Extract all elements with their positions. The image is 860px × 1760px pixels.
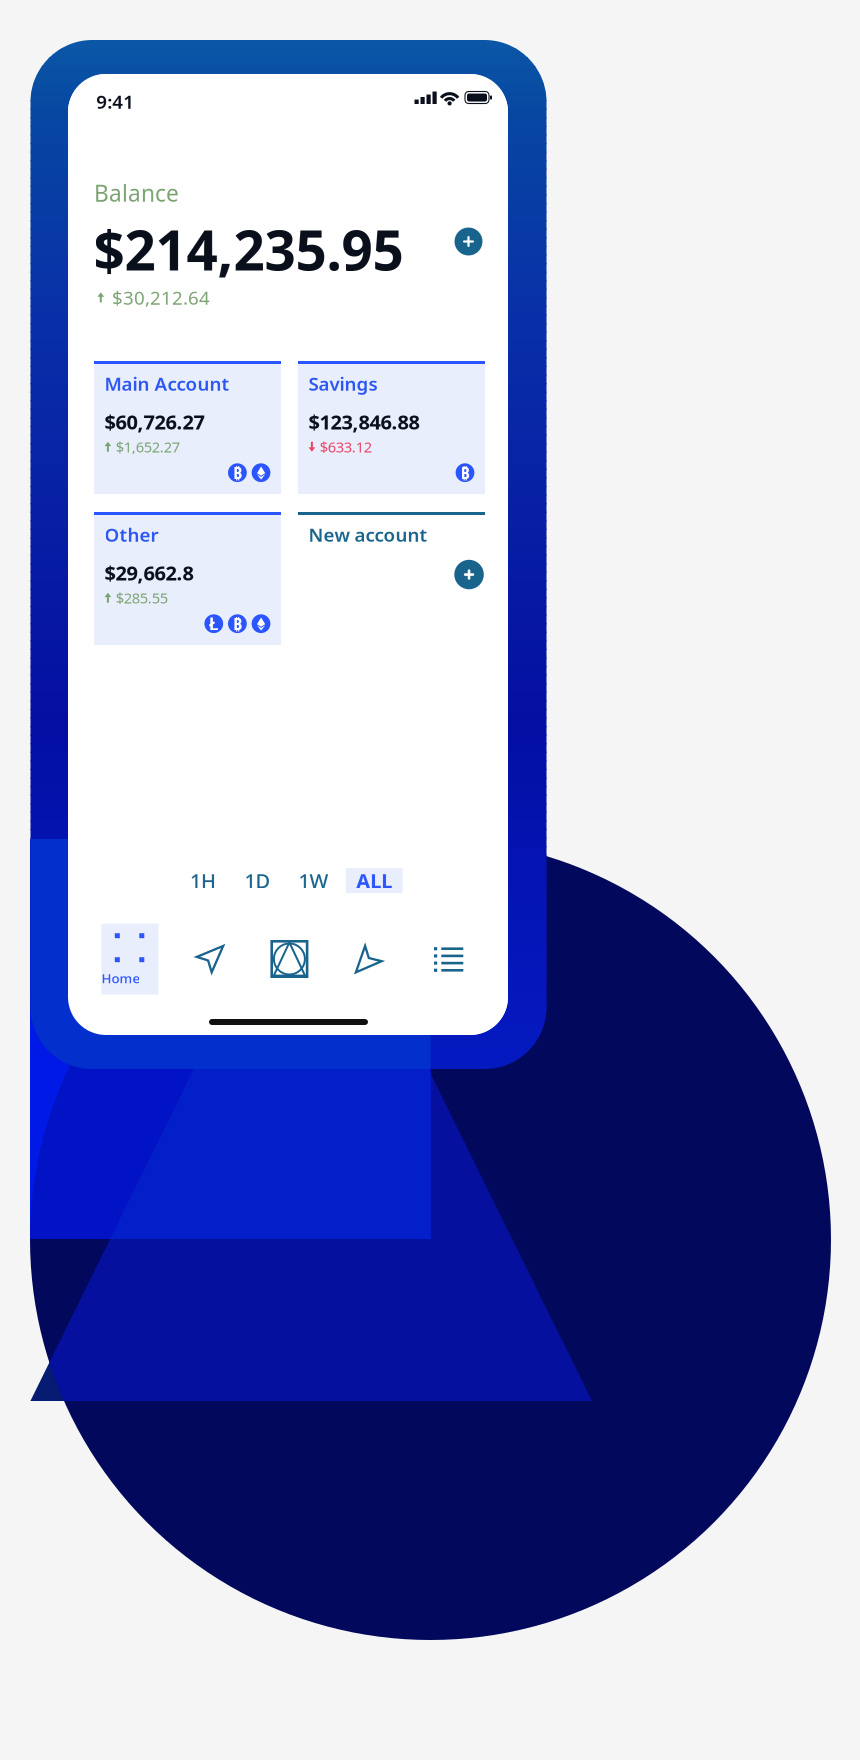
- button[interactable]: Activity: [434, 947, 463, 972]
- staticText: $285.55: [116, 588, 168, 607]
- button[interactable]: Portfolio: [270, 940, 308, 978]
- staticText: ₿: [233, 462, 242, 483]
- staticText: $1,652.27: [116, 437, 180, 456]
- staticText: $633.12: [320, 437, 372, 456]
- button[interactable]: 1W: [292, 868, 336, 893]
- button[interactable]: ALL: [346, 868, 403, 893]
- button[interactable]: Add account: [454, 227, 482, 255]
- button[interactable]: New account: [298, 512, 485, 645]
- staticText: $30,212.64: [112, 285, 210, 310]
- button[interactable]: ALL: [346, 868, 403, 893]
- button[interactable]: Home: [101, 924, 158, 995]
- button[interactable]: Other: [94, 512, 281, 645]
- staticText: Balance: [94, 178, 179, 208]
- staticText: New account: [308, 522, 427, 547]
- button[interactable]: Portfolio: [270, 940, 308, 978]
- button[interactable]: Send: [355, 945, 383, 974]
- staticText: $1,652.27: [116, 437, 180, 456]
- staticText: ALL: [356, 867, 392, 894]
- button[interactable]: Add account: [454, 227, 482, 255]
- staticText: ₿: [460, 462, 469, 483]
- staticText: ALL: [356, 867, 392, 894]
- staticText: Balance: [94, 178, 179, 208]
- staticText: 1W: [299, 867, 329, 894]
- staticText: Ł: [209, 612, 219, 635]
- staticText: 9:41: [96, 89, 134, 114]
- staticText: Savings: [308, 371, 377, 396]
- staticText: $214,235.95: [93, 213, 403, 286]
- staticText: $285.55: [116, 588, 168, 607]
- staticText: $123,846.88: [308, 408, 419, 435]
- button[interactable]: Home: [101, 924, 158, 995]
- button[interactable]: Savings: [298, 361, 485, 494]
- button[interactable]: Activity: [434, 947, 463, 972]
- button[interactable]: New account: [298, 512, 485, 645]
- button[interactable]: Main Account: [94, 361, 281, 494]
- staticText: $30,212.64: [112, 285, 210, 310]
- staticText: 1H: [190, 867, 216, 894]
- staticText: $29,662.8: [104, 559, 193, 586]
- button[interactable]: Other: [94, 512, 281, 645]
- staticText: Ł: [209, 612, 219, 635]
- staticText: Home: [101, 969, 140, 987]
- button[interactable]: Main Account: [94, 361, 281, 494]
- staticText: 9:41: [96, 89, 134, 114]
- button[interactable]: Explore: [195, 945, 224, 974]
- staticText: $123,846.88: [308, 408, 419, 435]
- staticText: Main Account: [104, 371, 229, 396]
- staticText: 1D: [244, 867, 270, 894]
- staticText: Main Account: [104, 371, 229, 396]
- staticText: $60,726.27: [104, 408, 204, 435]
- staticText: 1D: [244, 867, 270, 894]
- staticText: 1W: [299, 867, 329, 894]
- button[interactable]: 1D: [235, 868, 279, 893]
- staticText: ₿: [233, 613, 242, 634]
- button[interactable]: 1H: [181, 868, 225, 893]
- button[interactable]: 1D: [235, 868, 279, 893]
- staticText: ₿: [460, 462, 469, 483]
- staticText: $214,235.95: [93, 213, 403, 286]
- staticText: Savings: [308, 371, 377, 396]
- staticText: Other: [104, 522, 158, 547]
- staticText: $29,662.8: [104, 559, 193, 586]
- staticText: Home: [101, 969, 140, 987]
- staticText: ₿: [233, 613, 242, 634]
- button[interactable]: 1W: [292, 868, 336, 893]
- button[interactable]: Explore: [195, 945, 224, 974]
- button[interactable]: 1H: [181, 868, 225, 893]
- staticText: $60,726.27: [104, 408, 204, 435]
- staticText: 1H: [190, 867, 216, 894]
- button[interactable]: Send: [355, 945, 383, 974]
- staticText: $633.12: [320, 437, 372, 456]
- staticText: New account: [308, 522, 427, 547]
- staticText: Other: [104, 522, 158, 547]
- button[interactable]: Savings: [298, 361, 485, 494]
- staticText: ₿: [233, 462, 242, 483]
